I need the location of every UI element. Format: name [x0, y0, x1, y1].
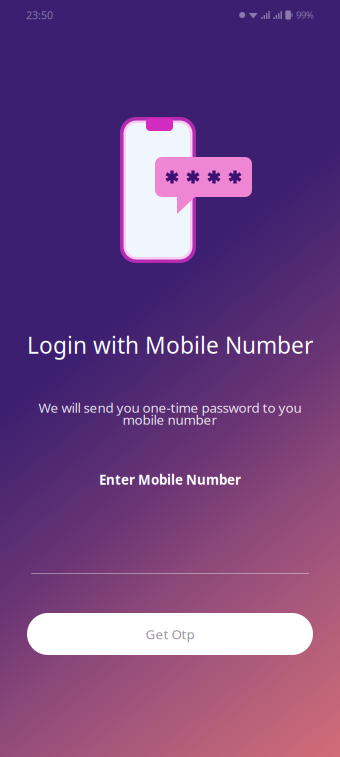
button[interactable]: Get Otp: [27, 613, 313, 655]
staticText: Enter Mobile Number: [99, 471, 241, 488]
staticText: 99%: [296, 9, 314, 21]
staticText: 23:50: [26, 8, 53, 22]
staticText: We will send you one-time password to yo…: [38, 399, 301, 416]
staticText: Get Otp: [145, 625, 194, 643]
staticText: Login with Mobile Number: [27, 330, 313, 360]
staticText: mobile number: [122, 411, 217, 428]
